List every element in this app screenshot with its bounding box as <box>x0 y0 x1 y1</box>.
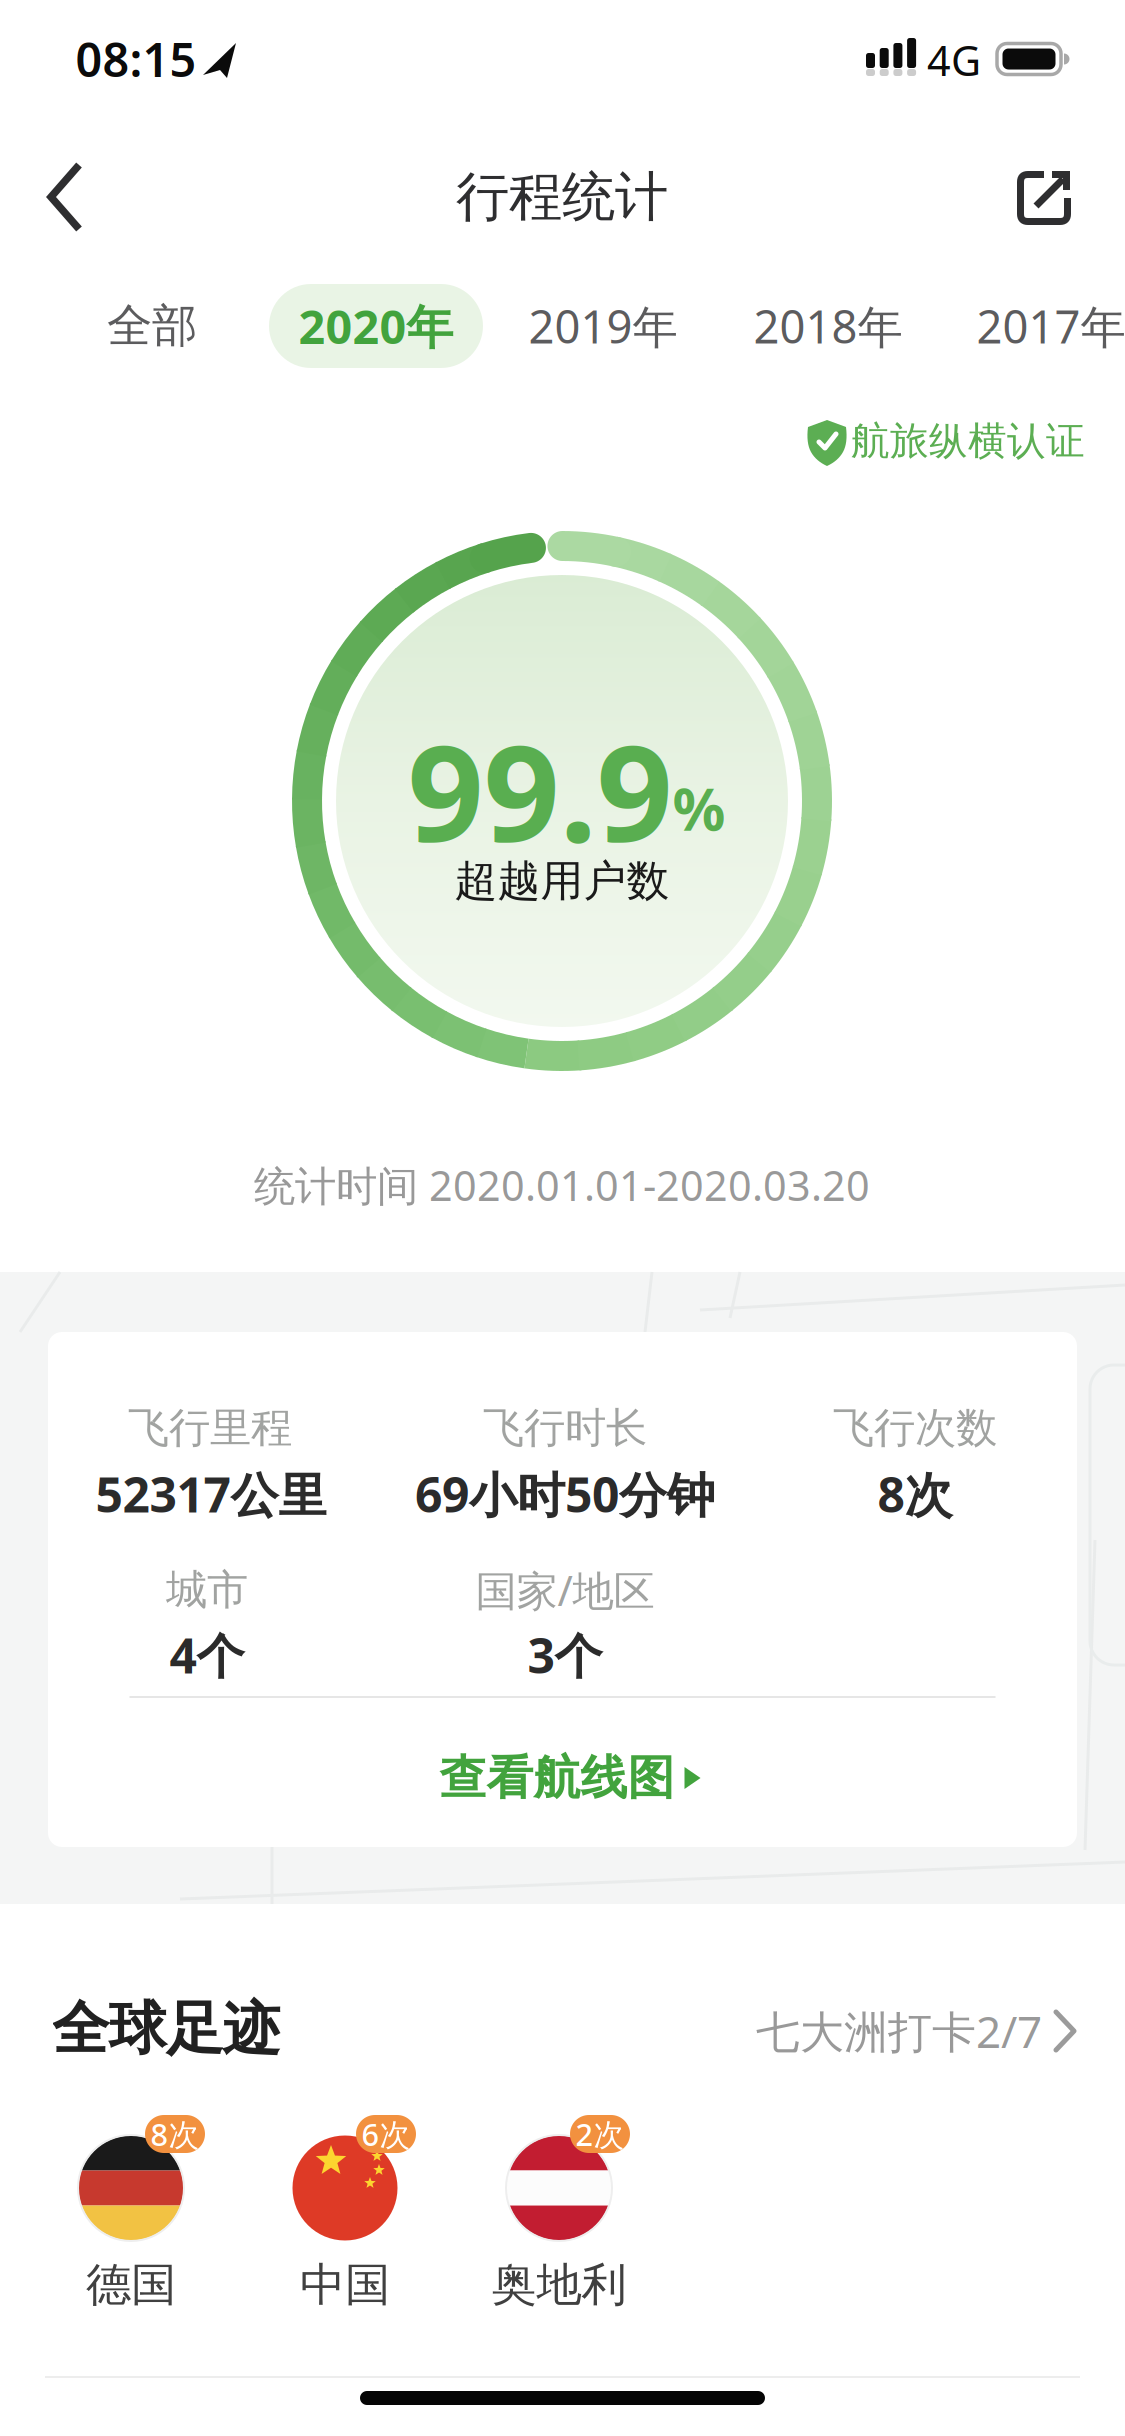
staticText: 6次 <box>361 2114 410 2154</box>
staticText: 德国 <box>86 2257 176 2313</box>
button[interactable]: 返回 <box>51 165 79 229</box>
button[interactable]: 2020年 <box>269 284 483 368</box>
staticText: 8次 <box>150 2114 199 2154</box>
staticText: 8次 <box>877 1462 952 1526</box>
staticText: 2020年 <box>298 295 453 357</box>
staticText: 2019年 <box>528 296 677 356</box>
staticText: 七大洲打卡2/7 <box>756 2002 1042 2060</box>
staticText: 全部 <box>107 298 197 354</box>
staticText: 4G <box>927 33 981 87</box>
staticText: 国家/地区 <box>475 1563 654 1617</box>
staticText: 城市 <box>166 1565 248 1615</box>
button[interactable]: 2017年 <box>961 278 1125 374</box>
staticText: 52317公里 <box>95 1462 326 1526</box>
staticText: 行程统计 <box>456 164 668 230</box>
staticText: 统计时间 2020.01.01-2020.03.20 <box>254 1158 870 1212</box>
staticText: 飞行次数 <box>833 1403 997 1453</box>
staticText: 飞行里程 <box>128 1403 292 1453</box>
staticText: 99.9 <box>407 701 672 879</box>
staticText: 69小时50分钟 <box>415 1462 715 1526</box>
staticText: 奥地利 <box>491 2257 626 2313</box>
button[interactable]: 2018年 <box>738 278 918 374</box>
button[interactable]: 奥地利 <box>449 2092 669 2322</box>
staticText: 飞行时长 <box>483 1403 647 1453</box>
staticText: 2017年 <box>976 296 1125 356</box>
staticText: 4个 <box>169 1623 244 1687</box>
button[interactable]: 分享 <box>1017 171 1071 225</box>
staticText: 2018年 <box>753 296 902 356</box>
button[interactable]: 全部 <box>82 278 222 374</box>
staticText: 航旅纵横认证 <box>851 417 1085 465</box>
button[interactable]: 七大洲打卡2/7 <box>750 1981 1080 2081</box>
button[interactable]: 查看航线图 <box>370 1728 770 1828</box>
button[interactable]: 德国 <box>21 2092 241 2322</box>
staticText: 查看航线图 <box>439 1749 674 1807</box>
staticText: 全球足迹 <box>52 1994 280 2064</box>
staticText: 2次 <box>575 2114 624 2154</box>
staticText: 超越用户数 <box>454 855 669 907</box>
staticText: 08:15 <box>75 28 196 90</box>
button[interactable]: 2019年 <box>513 278 693 374</box>
staticText: % <box>672 769 725 847</box>
staticText: 中国 <box>300 2257 390 2313</box>
staticText: 3个 <box>527 1623 602 1687</box>
button[interactable]: 中国 <box>235 2092 455 2322</box>
